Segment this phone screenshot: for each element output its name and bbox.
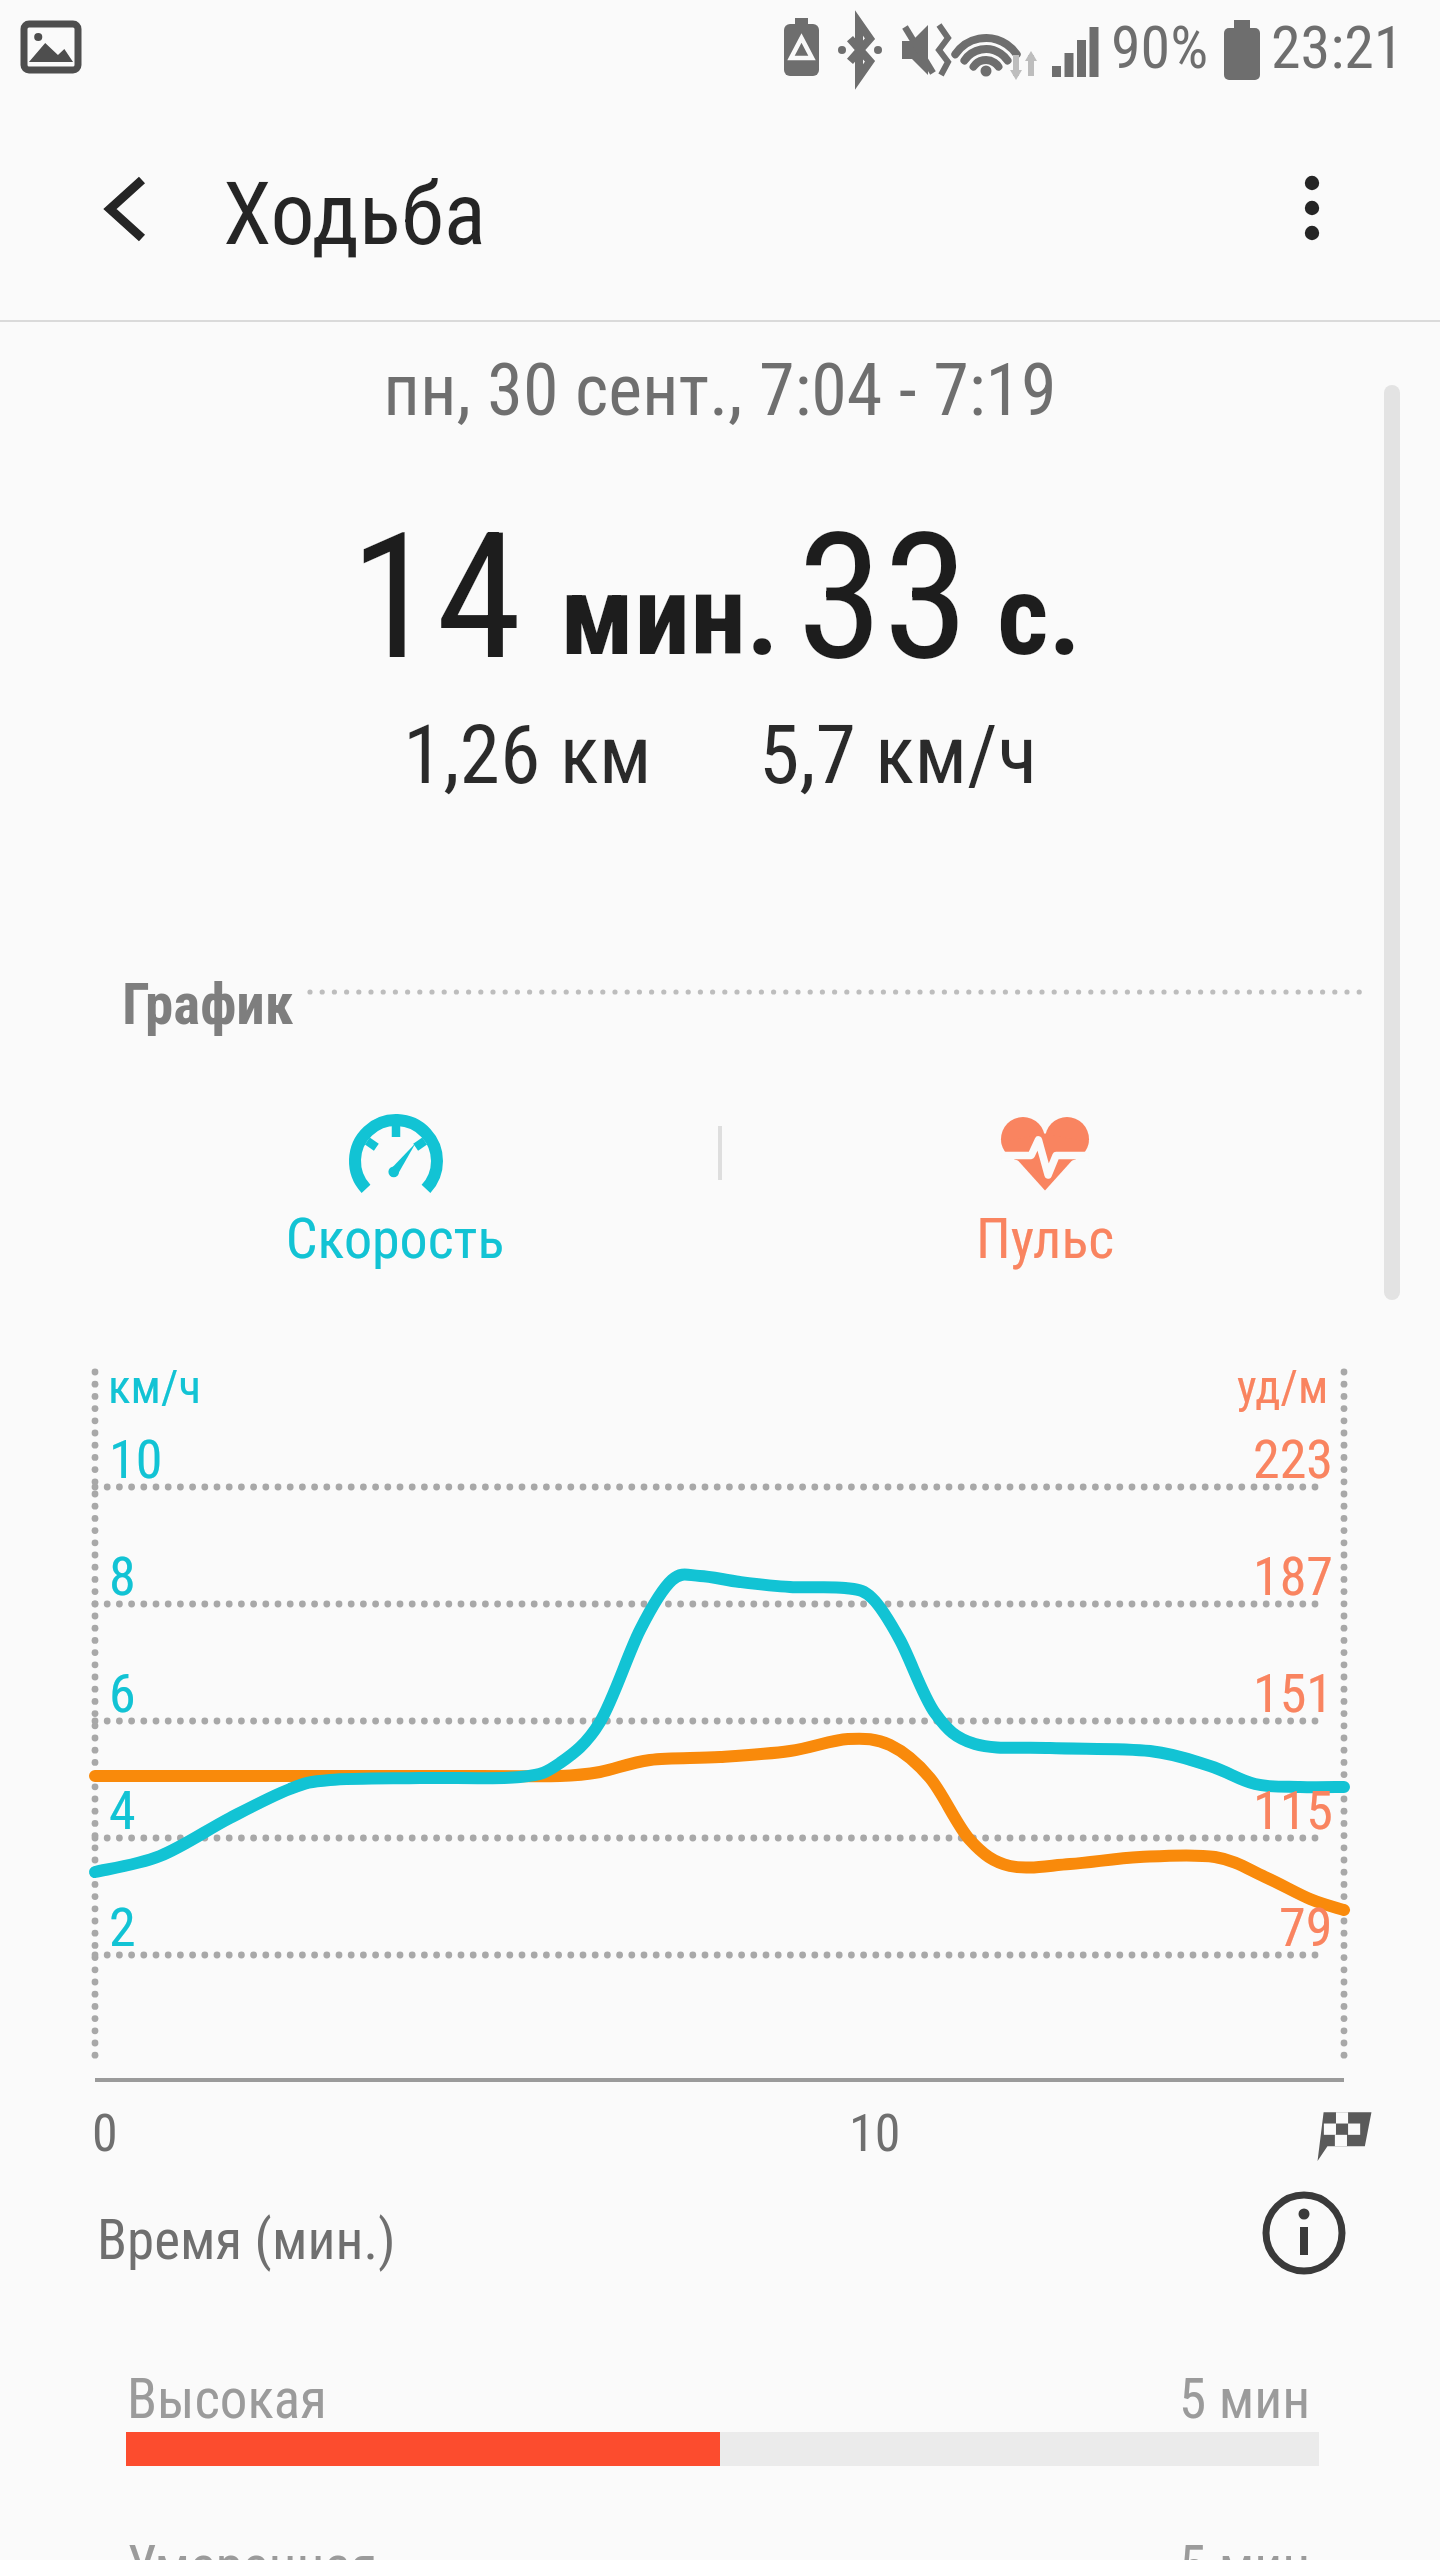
staticText: Скорость [170,1206,620,1272]
staticText: Время (мин.) [97,2208,396,2272]
staticText: 8 [109,1545,136,1608]
button[interactable]: Назад [71,154,181,264]
button[interactable]: Скорость [170,1105,620,1290]
staticText: 187 [1253,1545,1333,1608]
staticText: Пульс [820,1206,1270,1272]
staticText: 23:21 [1271,12,1404,82]
staticText: 2 [109,1896,136,1959]
staticText: 5,7 км/ч [759,707,1038,803]
button[interactable]: Умеренная [0,2534,1440,2560]
staticText: 14 [350,496,522,700]
button[interactable]: Высокая [0,2367,1440,2477]
button[interactable]: Финиш [1317,2108,1372,2161]
staticText: 115 [1253,1779,1333,1842]
staticText: мин. [560,550,779,681]
staticText: пн, 30 сент., 7:04 - 7:19 [0,348,1440,432]
button[interactable]: Информация [1262,2191,1346,2275]
staticText: 151 [1253,1662,1333,1725]
staticText: 223 [1253,1428,1333,1491]
staticText: 33 [797,496,969,700]
staticText: 4 [109,1779,136,1842]
staticText: км/ч [108,1359,201,1414]
staticText: 6 [109,1662,136,1725]
staticText: 0 [92,2103,118,2164]
staticText: Высокая [127,2367,327,2431]
staticText: 10 [109,1428,163,1491]
button[interactable]: Пульс [820,1105,1270,1290]
staticText: 5 мин [1179,2367,1311,2431]
button[interactable]: Ещё [1254,150,1370,266]
staticText: уд/м [1237,1359,1329,1414]
staticText: с. [997,550,1082,681]
staticText: График [122,971,294,1038]
staticText: 90% [1111,12,1209,82]
staticText: Ходьба [223,162,486,265]
staticText: 10 [849,2103,901,2164]
staticText: 79 [1279,1896,1333,1959]
staticText: 5 мин [1179,2534,1311,2560]
staticText: 1,26 км [403,707,652,803]
staticText: Умеренная [127,2534,378,2560]
